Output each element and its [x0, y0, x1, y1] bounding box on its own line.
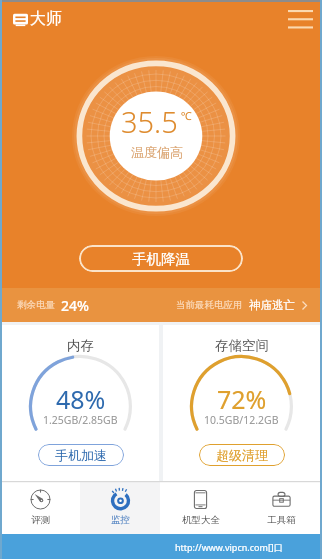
button[interactable]: 监控 [80, 481, 160, 534]
staticText: 评测 [31, 514, 50, 526]
staticText: 剩余电量 [17, 299, 55, 311]
staticText: http://www.vipcn.com[]口 [175, 541, 283, 553]
staticText: 机型大全 [182, 514, 220, 526]
staticText: 35.5 [121, 102, 178, 141]
staticText: ℃ [181, 108, 192, 123]
button[interactable]: 超级清理 [199, 444, 285, 466]
button[interactable]: 机型大全 [160, 481, 241, 534]
button[interactable]: 手机降温 [79, 245, 243, 272]
staticText: 内存 [67, 337, 94, 354]
staticText: 手机加速 [55, 447, 107, 463]
button[interactable]: Menu [282, 5, 319, 34]
staticText: 超级清理 [216, 447, 268, 463]
staticText: 存储空间 [215, 337, 269, 354]
staticText: 当前最耗电应用 [176, 299, 243, 311]
button[interactable]: 当前最耗电应用 [176, 298, 307, 312]
button[interactable]: 手机加速 [38, 444, 124, 466]
staticText: 10.5GB/12.2GB [204, 413, 279, 427]
staticText: 工具箱 [267, 514, 296, 526]
staticText: 温度偏高 [131, 144, 183, 160]
staticText: 监控 [111, 514, 130, 526]
button[interactable]: 工具箱 [241, 481, 322, 534]
staticText: 24% [61, 296, 89, 315]
staticText: 大师 [30, 9, 62, 29]
staticText: 48% [56, 382, 106, 416]
button[interactable]: 评测 [0, 481, 80, 534]
button[interactable]: 存储空间 [163, 325, 320, 481]
staticText: 1.25GB/2.85GB [43, 413, 118, 427]
staticText: 72% [217, 382, 267, 416]
staticText: 神庙逃亡 [249, 298, 295, 312]
staticText: 手机降温 [132, 250, 190, 268]
button[interactable]: 内存 [2, 325, 159, 481]
